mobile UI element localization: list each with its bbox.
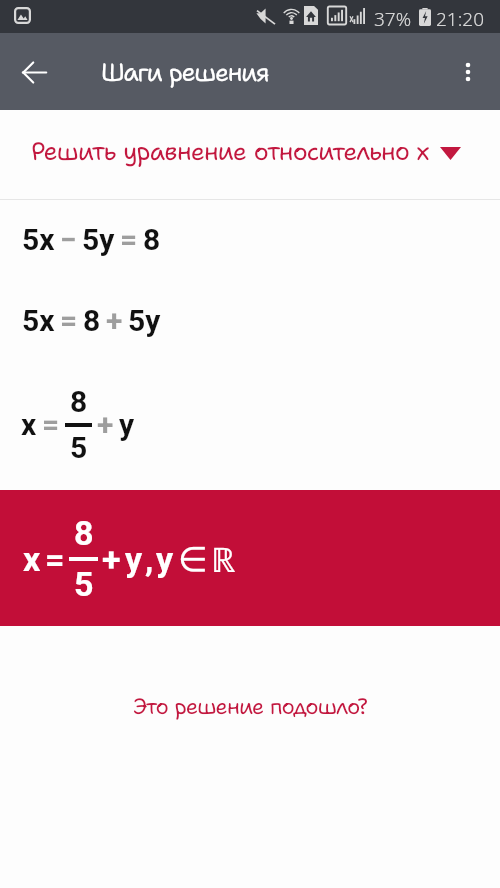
staticText: Шаги решения (101, 55, 269, 89)
staticText: 8 (83, 303, 101, 338)
staticText: x (23, 539, 41, 579)
staticText: 37% (374, 6, 412, 32)
staticText: 21:20 (436, 6, 485, 32)
staticText: 8 (70, 384, 88, 419)
staticText: x (21, 407, 37, 442)
staticText: 5y (82, 222, 115, 257)
staticText: = (42, 407, 60, 442)
staticText: Это решение подошло? (0, 692, 500, 721)
staticText: y (156, 539, 174, 579)
staticText: y (125, 539, 143, 579)
staticText: 5x (22, 222, 55, 257)
staticText: y (119, 407, 135, 442)
staticText: + (97, 407, 114, 442)
staticText: + (102, 539, 121, 579)
staticText: − (60, 222, 77, 257)
staticText: 5 (74, 564, 94, 604)
staticText: + (106, 303, 123, 338)
staticText: 8 (143, 222, 161, 257)
button[interactable]: Решить уравнение относительно x (0, 122, 500, 180)
button[interactable]: More options (444, 48, 492, 96)
staticText: 5y (128, 303, 161, 338)
staticText: ∈ (178, 539, 208, 579)
staticText: = (60, 303, 78, 338)
button[interactable]: Back (10, 48, 58, 96)
staticText: , (145, 539, 154, 579)
staticText: = (45, 539, 65, 579)
staticText: 8 (74, 513, 94, 553)
staticText: ℝ (211, 536, 236, 582)
staticText: 5x (22, 303, 55, 338)
staticText: 5 (70, 430, 88, 465)
staticText: = (120, 222, 138, 257)
staticText: Решить уравнение относительно x (31, 134, 429, 168)
